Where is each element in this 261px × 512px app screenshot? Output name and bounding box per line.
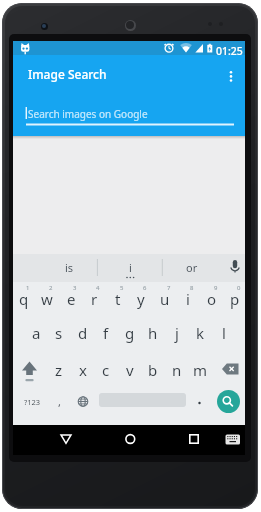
staticText: c bbox=[102, 360, 110, 380]
staticText: , bbox=[58, 394, 61, 409]
staticText: v bbox=[126, 360, 134, 380]
staticText: x bbox=[79, 360, 87, 380]
staticText: ?123 bbox=[24, 397, 41, 407]
staticText: 7 bbox=[167, 284, 171, 292]
button[interactable]: s bbox=[48, 322, 70, 344]
button[interactable]: n bbox=[166, 359, 188, 381]
button[interactable] bbox=[117, 425, 143, 455]
button[interactable]: x bbox=[72, 359, 94, 381]
button[interactable]: d bbox=[72, 322, 94, 344]
staticText: z bbox=[55, 360, 63, 380]
button[interactable]: or bbox=[181, 256, 203, 278]
staticText: q bbox=[19, 289, 29, 309]
staticText: f bbox=[103, 323, 109, 343]
button[interactable]: q bbox=[13, 288, 35, 310]
staticText: b bbox=[148, 360, 158, 380]
button[interactable]: b bbox=[142, 359, 164, 381]
button[interactable]: 0 bbox=[228, 277, 250, 299]
button[interactable]: w bbox=[36, 288, 58, 310]
staticText: 4 bbox=[96, 284, 100, 292]
staticText: 2 bbox=[49, 284, 53, 292]
button[interactable]: is bbox=[58, 256, 80, 278]
button[interactable]: t bbox=[107, 288, 129, 310]
button[interactable]: 1 bbox=[17, 277, 39, 299]
staticText: i bbox=[129, 260, 132, 275]
staticText: 3 bbox=[73, 284, 77, 292]
button[interactable]: g bbox=[119, 322, 141, 344]
button[interactable]: Search images on Google bbox=[13, 99, 245, 129]
staticText: j bbox=[175, 323, 179, 343]
button[interactable]: z bbox=[48, 359, 70, 381]
staticText: m bbox=[193, 360, 208, 380]
staticText: or bbox=[186, 260, 198, 275]
staticText: Search images on Google bbox=[28, 107, 148, 121]
staticText: 8 bbox=[190, 284, 194, 292]
staticText: r bbox=[91, 289, 98, 309]
staticText: d bbox=[78, 323, 88, 343]
button[interactable]: 2 bbox=[40, 277, 62, 299]
button[interactable]: j bbox=[166, 322, 188, 344]
button[interactable]: 4 bbox=[87, 277, 109, 299]
button[interactable]: l bbox=[213, 322, 235, 344]
button[interactable]: i bbox=[119, 256, 141, 278]
staticText: t bbox=[115, 289, 121, 309]
staticText: 1 bbox=[26, 284, 30, 292]
staticText: g bbox=[125, 323, 135, 343]
button[interactable]: f bbox=[95, 322, 117, 344]
button[interactable] bbox=[217, 390, 240, 413]
staticText: 9 bbox=[214, 284, 218, 292]
staticText: w bbox=[41, 289, 53, 309]
staticText: y bbox=[137, 289, 145, 309]
staticText: 5 bbox=[120, 284, 124, 292]
staticText: n bbox=[172, 360, 182, 380]
button[interactable]: , bbox=[48, 390, 70, 412]
staticText: p bbox=[230, 289, 240, 309]
staticText: k bbox=[196, 323, 205, 343]
staticText: Image Search bbox=[28, 66, 107, 82]
button[interactable]: u bbox=[154, 288, 176, 310]
button[interactable]: 8 bbox=[181, 277, 203, 299]
staticText: u bbox=[160, 289, 170, 309]
button[interactable]: 7 bbox=[158, 277, 180, 299]
button[interactable]: k bbox=[189, 322, 211, 344]
button[interactable]: Image Search bbox=[13, 55, 245, 93]
staticText: is bbox=[65, 260, 74, 275]
button[interactable]: o bbox=[201, 288, 223, 310]
staticText: a bbox=[32, 323, 41, 343]
staticText: 01:25 bbox=[216, 44, 243, 58]
staticText: 0 bbox=[237, 284, 241, 292]
button[interactable]: 6 bbox=[134, 277, 156, 299]
button[interactable]: h bbox=[142, 322, 164, 344]
button[interactable]: v bbox=[119, 359, 141, 381]
button[interactable]: 9 bbox=[205, 277, 227, 299]
staticText: i bbox=[186, 289, 190, 309]
button[interactable]: p bbox=[224, 288, 246, 310]
staticText: e bbox=[67, 289, 76, 309]
staticText: o bbox=[207, 289, 217, 309]
button[interactable]: y bbox=[130, 288, 152, 310]
button[interactable]: c bbox=[95, 359, 117, 381]
staticText: 6 bbox=[143, 284, 147, 292]
button[interactable]: e bbox=[60, 288, 82, 310]
staticText: l bbox=[222, 323, 226, 343]
button[interactable]: r bbox=[83, 288, 105, 310]
button[interactable]: m bbox=[189, 359, 211, 381]
button[interactable] bbox=[53, 425, 79, 455]
button[interactable]: i bbox=[177, 288, 199, 310]
button[interactable]: ?123 bbox=[21, 391, 43, 413]
button[interactable]: 5 bbox=[111, 277, 133, 299]
button[interactable]: a bbox=[25, 322, 47, 344]
staticText: s bbox=[55, 323, 63, 343]
button[interactable]: 3 bbox=[64, 277, 86, 299]
button[interactable] bbox=[181, 425, 207, 455]
staticText: h bbox=[148, 323, 158, 343]
